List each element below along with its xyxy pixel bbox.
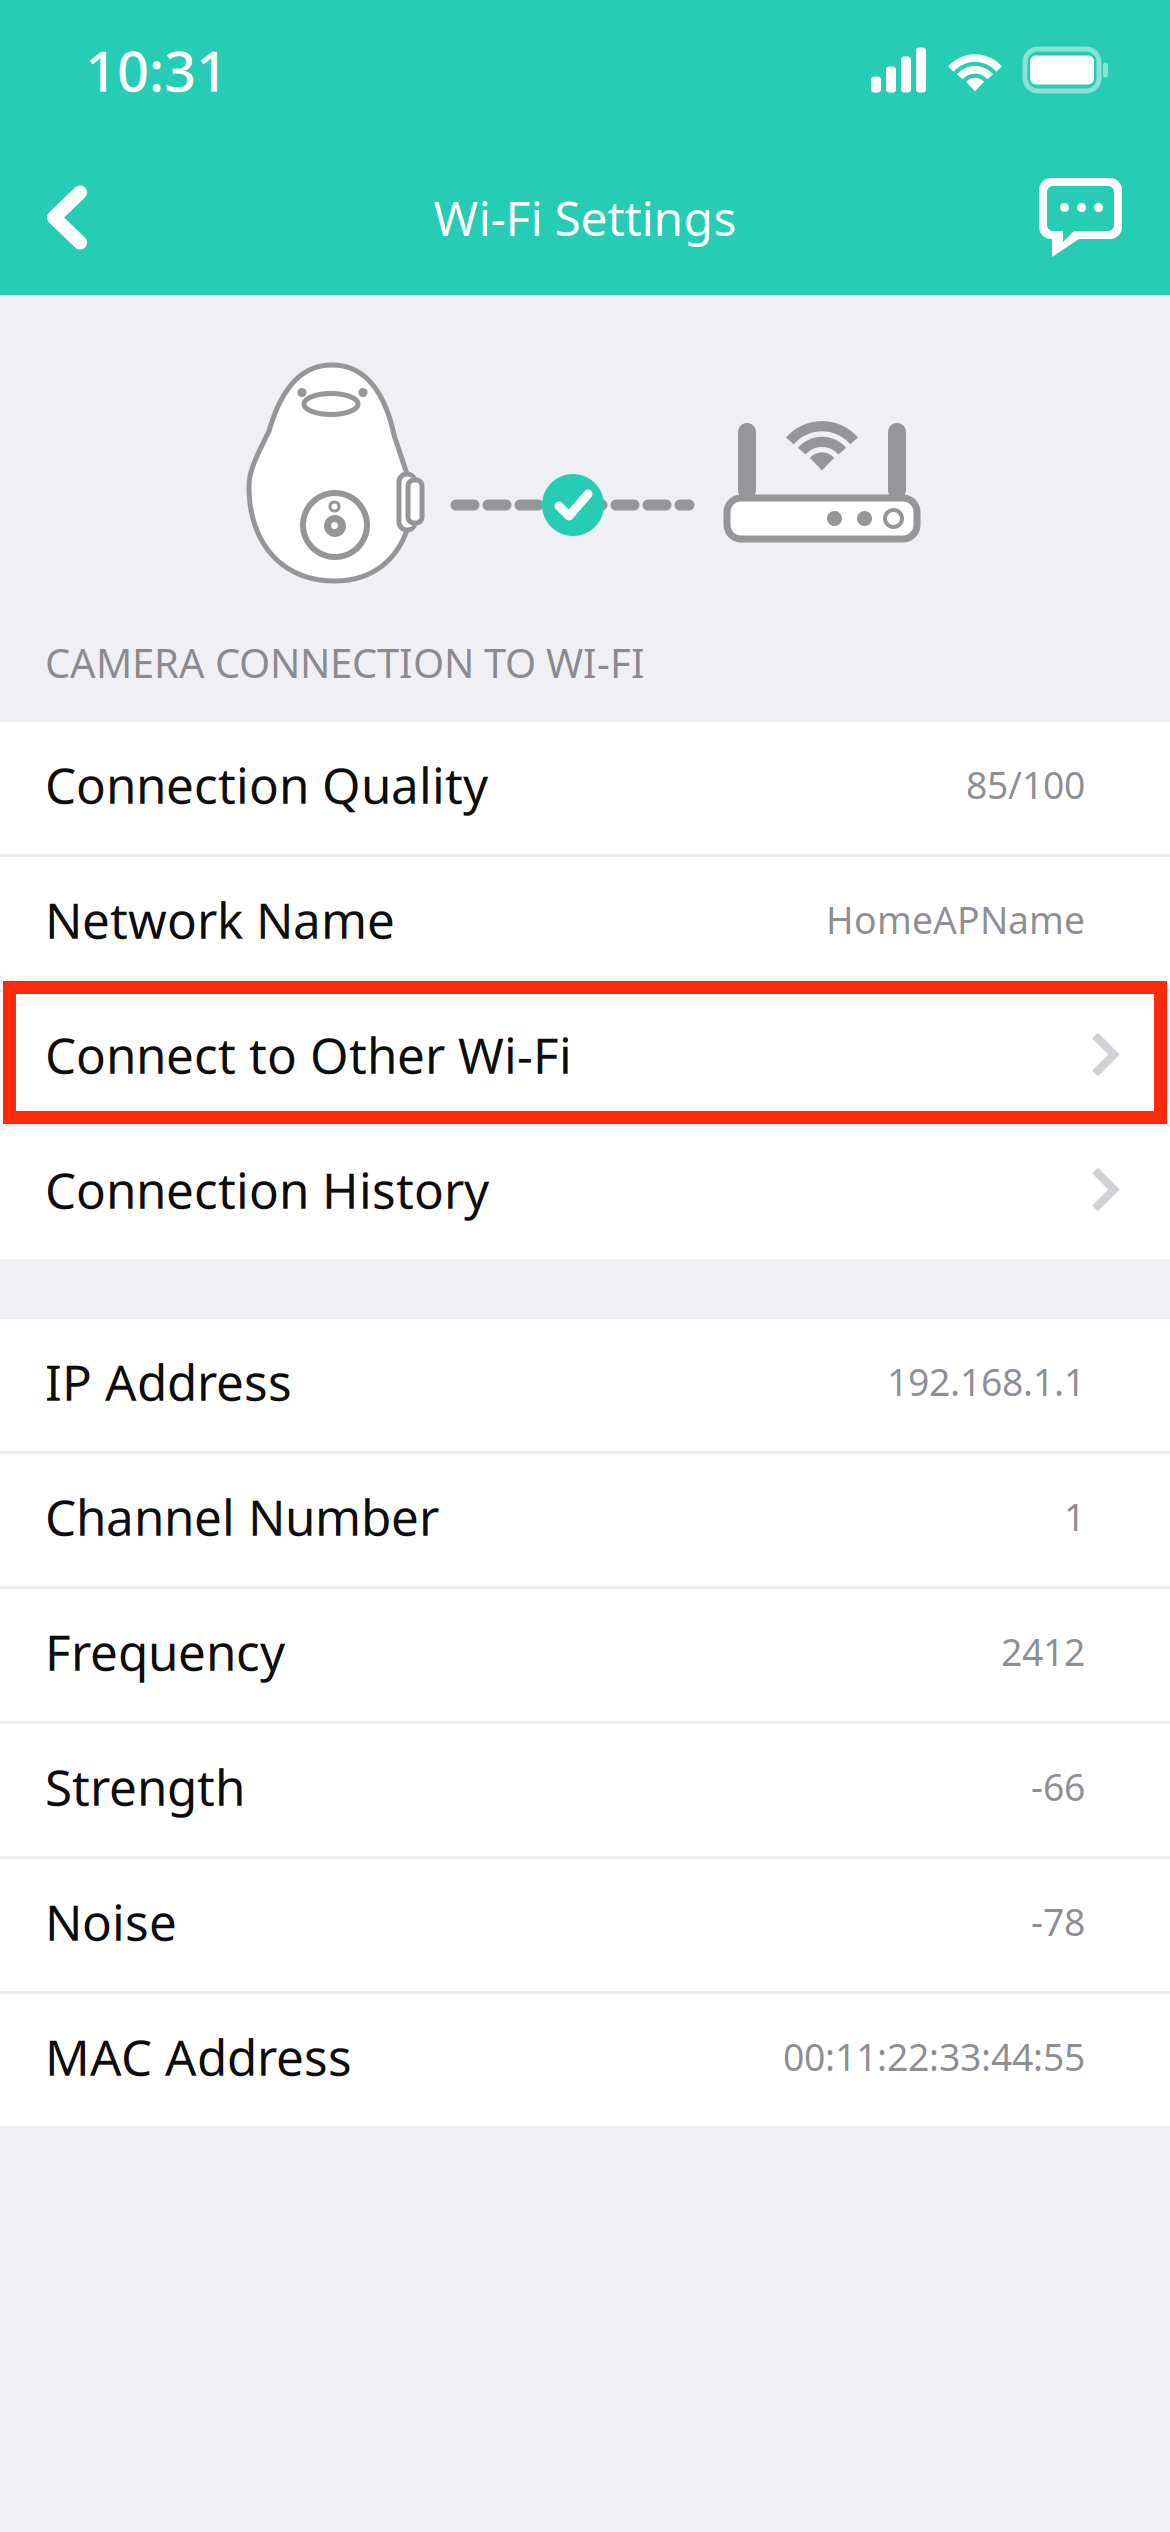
staticText: HomeAPName xyxy=(826,895,1085,944)
button[interactable]: Messages xyxy=(1039,140,1170,295)
staticText: -78 xyxy=(1031,1897,1085,1946)
staticText: Noise xyxy=(45,1889,177,1954)
staticText: Connect to Other Wi-Fi xyxy=(45,1022,572,1087)
staticText: 85/100 xyxy=(966,760,1085,809)
staticText: 2412 xyxy=(1001,1627,1085,1676)
staticText: Strength xyxy=(45,1754,245,1819)
button[interactable]: Back xyxy=(0,140,125,295)
staticText: Connection History xyxy=(45,1157,489,1222)
staticText: MAC Address xyxy=(45,2024,352,2089)
staticText: 00:11:22:33:44:55 xyxy=(783,2032,1085,2081)
staticText: Channel Number xyxy=(45,1484,439,1549)
staticText: Network Name xyxy=(45,887,395,952)
staticText: IP Address xyxy=(45,1349,292,1414)
staticText: CAMERA CONNECTION TO WI-FI xyxy=(45,636,645,689)
staticText: 10:31 xyxy=(85,33,228,107)
staticText: 1 xyxy=(1064,1492,1085,1541)
staticText: Connection Quality xyxy=(45,752,488,817)
staticText: 192.168.1.1 xyxy=(887,1357,1085,1406)
button[interactable]: Connect to Other Wi-Fi xyxy=(0,992,1170,1124)
staticText: Wi-Fi Settings xyxy=(433,186,736,249)
staticText: Frequency xyxy=(45,1619,285,1684)
button[interactable]: Connection History xyxy=(0,1127,1170,1259)
staticText: -66 xyxy=(1031,1762,1085,1811)
